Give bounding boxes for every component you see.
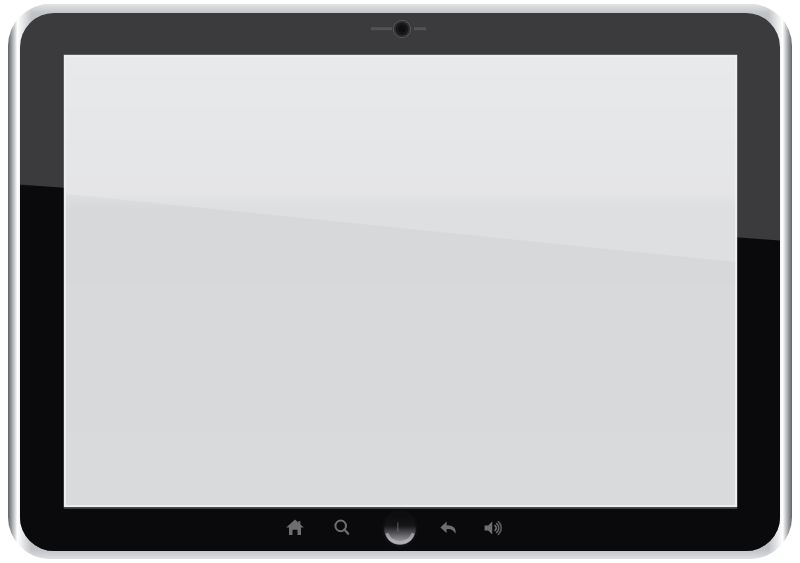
button[interactable]: Home: [284, 516, 308, 540]
button[interactable]: Volume: [479, 516, 505, 540]
button[interactable]: Home button: [382, 511, 418, 547]
button[interactable]: Back: [436, 516, 460, 540]
button[interactable]: Search: [330, 516, 354, 540]
